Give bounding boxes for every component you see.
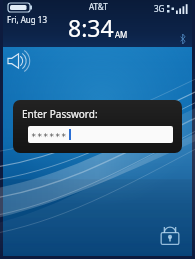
button[interactable]: Enter Password: xyxy=(13,100,182,153)
staticText: Enter Password: xyxy=(22,107,98,121)
staticText: 3G xyxy=(154,3,165,14)
button[interactable]: Locked xyxy=(157,221,183,247)
staticText: AT&T xyxy=(89,1,108,12)
staticText: Fri, Aug 13 xyxy=(7,14,47,25)
button[interactable]: Sound profile xyxy=(7,48,33,74)
staticText: AM xyxy=(115,29,128,40)
staticText: 8:34 xyxy=(68,12,114,43)
button[interactable]: ∗∗∗∗∗∗ xyxy=(28,126,173,143)
staticText: ∗∗∗∗∗∗ xyxy=(31,130,68,140)
